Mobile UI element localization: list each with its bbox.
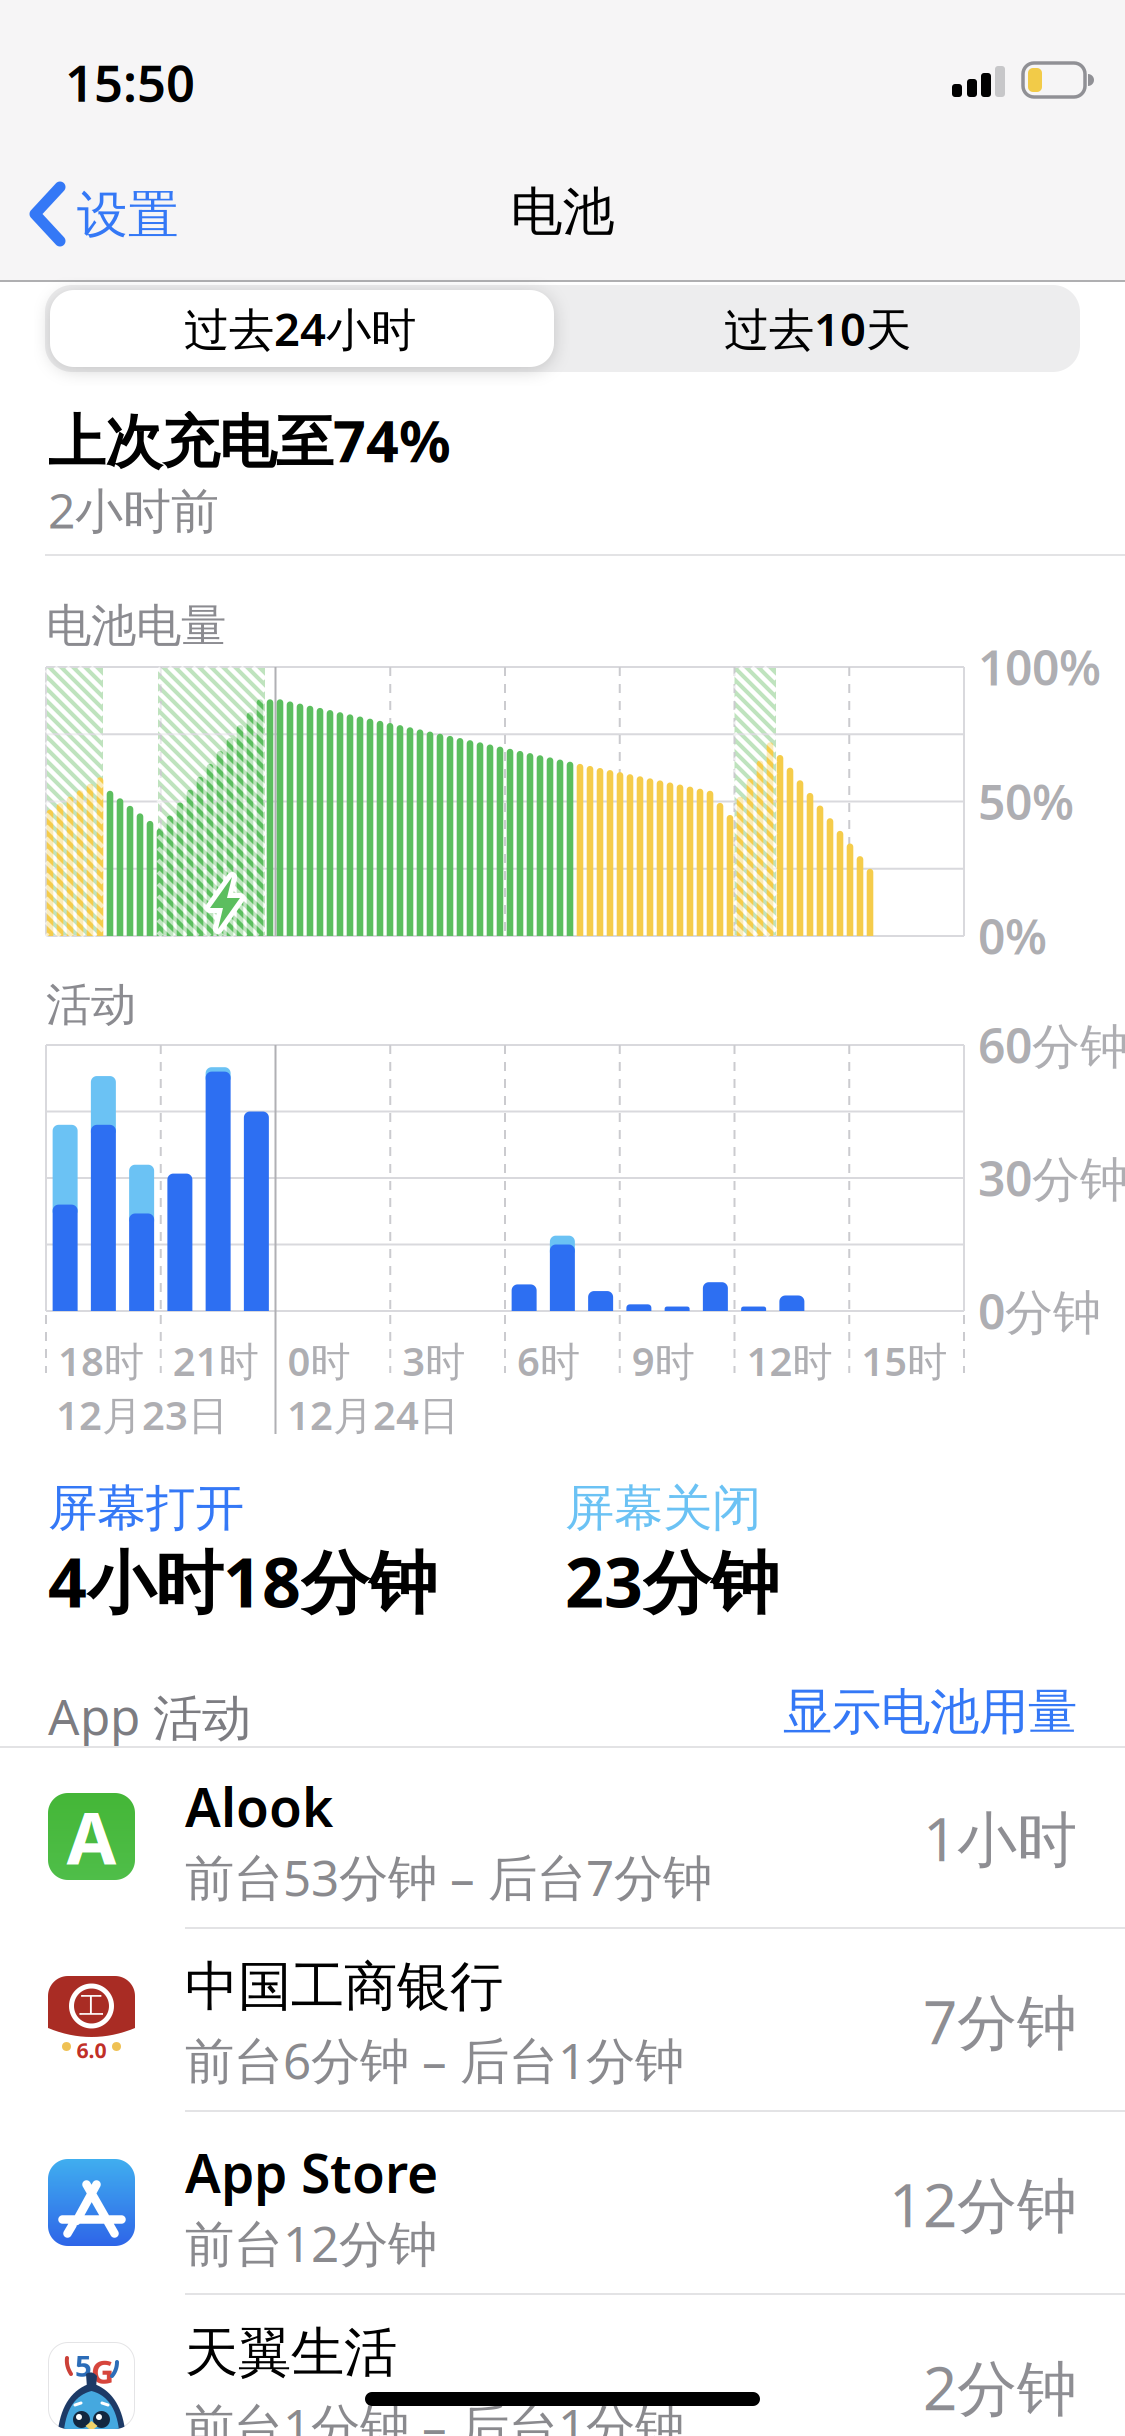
staticText: 前台12分钟 [185,2210,437,2275]
staticText: 2分钟 [923,2347,1077,2427]
staticText: 0分钟 [978,1279,1101,1343]
staticText: 5 [75,2346,92,2385]
staticText: App 活动 [48,1683,251,1749]
staticText: 过去24小时 [184,298,416,359]
staticText: 6.0 [76,2036,106,2064]
staticText: 30分钟 [978,1146,1125,1210]
staticText: 7分钟 [923,1981,1077,2061]
staticText: 前台6分钟 – 后台1分钟 [185,2027,684,2092]
staticText: 3时 [402,1334,465,1387]
staticText: 上次充电至74% [48,402,451,478]
staticText: 100% [978,635,1101,699]
staticText: 2小时前 [48,478,219,542]
staticText: App Store [185,2137,438,2208]
staticText: 电池电量 [46,598,226,654]
staticText: 电池 [510,180,614,244]
staticText: 6时 [517,1334,580,1387]
staticText: A [66,1789,116,1884]
staticText: 12月24日 [287,1388,459,1441]
staticText: 15时 [861,1334,947,1387]
staticText: 前台53分钟 – 后台7分钟 [185,1844,712,1909]
staticText: 活动 [46,977,136,1033]
staticText: 过去10天 [724,298,911,359]
staticText: 12时 [746,1334,832,1387]
staticText: 23分钟 [565,1536,779,1626]
staticText: 中国工商银行 [185,1954,503,2019]
staticText: 0% [978,904,1047,968]
staticText: G [91,2350,114,2392]
staticText: 工 [79,1990,104,2021]
staticText: 屏幕关闭 [565,1478,761,1539]
staticText: 1小时 [923,1798,1077,1878]
staticText: 设置 [77,184,179,246]
staticText: 15:50 [65,48,195,116]
staticText: 显示电池用量 [783,1682,1077,1742]
staticText: 天翼生活 [185,2320,397,2385]
staticText: 前台1分钟 – 后台1分钟 [185,2393,684,2436]
staticText: 21时 [173,1334,259,1387]
staticText: 12月23日 [56,1388,228,1441]
staticText: 9时 [632,1334,695,1387]
staticText: 18时 [58,1334,144,1387]
staticText: 60分钟 [978,1013,1125,1077]
staticText: 0时 [287,1334,350,1387]
staticText: 12分钟 [889,2164,1077,2244]
staticText: 4小时18分钟 [48,1536,437,1626]
staticText: 屏幕打开 [48,1478,244,1539]
staticText: 50% [978,770,1074,833]
staticText: Alook [185,1771,333,1842]
